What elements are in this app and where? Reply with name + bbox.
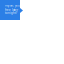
staticText: free later bbox=[5, 8, 18, 12]
staticText: Hey are you bbox=[5, 4, 20, 7]
staticText: tonight? bbox=[5, 11, 17, 15]
